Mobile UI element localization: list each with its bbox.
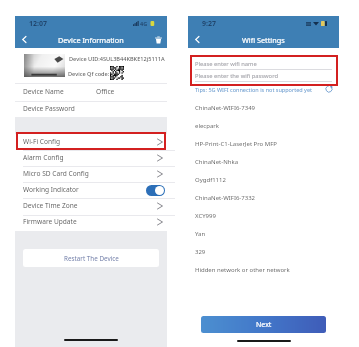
staticText: Yan xyxy=(195,230,206,238)
staticText: XCY999 xyxy=(195,212,216,220)
button[interactable]: Back xyxy=(188,31,206,48)
button[interactable]: HP-Print-C1-LaserJet Pro MFP xyxy=(195,135,332,153)
staticText: Device Name xyxy=(23,87,64,96)
button[interactable]: Device Password xyxy=(15,102,167,117)
staticText: ChinaNet-Nhka xyxy=(195,158,239,166)
button[interactable]: ChinaNet-WIFI6-7332 xyxy=(195,189,332,207)
button[interactable]: Delete device xyxy=(151,33,165,47)
staticText: Oygdf1112 xyxy=(195,176,226,184)
staticText: Device Time Zone xyxy=(23,201,78,210)
button[interactable]: elecpark xyxy=(195,117,332,135)
button[interactable]: Next xyxy=(201,316,326,333)
button[interactable]: Alarm Config xyxy=(15,150,167,166)
staticText: Device UID:4SUL3B44KBKE12j5111A xyxy=(69,55,165,63)
staticText: ChinaNet-WIFI6-7332 xyxy=(195,194,256,202)
staticText: Alarm Config xyxy=(23,153,64,162)
button[interactable]: Hidden network or other network xyxy=(195,261,332,279)
button[interactable]: Refresh xyxy=(324,84,334,94)
button[interactable]: Device Name xyxy=(15,84,167,101)
staticText: Device Password xyxy=(23,104,75,113)
button[interactable]: Firmware Update xyxy=(15,214,167,230)
button[interactable]: Working Indicator xyxy=(15,182,167,198)
button[interactable]: Micro SD Card Config xyxy=(15,166,167,182)
staticText: 329 xyxy=(195,248,206,256)
staticText: HP-Print-C1-LaserJet Pro MFP xyxy=(195,140,277,148)
staticText: Hidden network or other network xyxy=(195,266,290,274)
staticText: Firmware Update xyxy=(23,217,77,226)
button[interactable]: Oygdf1112 xyxy=(195,171,332,189)
staticText: Please enter the wifi password xyxy=(195,72,278,80)
staticText: ChinaNet-WIFI6-7349 xyxy=(195,104,256,112)
staticText: Restart The Device xyxy=(64,254,119,263)
staticText: Working Indicator xyxy=(23,185,79,194)
staticText: Next xyxy=(256,320,272,330)
staticText: Tips: 5G WIFI connection is not supporte… xyxy=(195,86,312,93)
button[interactable]: Restart The Device xyxy=(23,249,159,267)
button[interactable]: 329 xyxy=(195,243,332,261)
staticText: 12:07 xyxy=(29,19,47,29)
staticText: Wifi Settings xyxy=(242,35,285,45)
button[interactable]: Device Time Zone xyxy=(15,198,167,214)
staticText: Micro SD Card Config xyxy=(23,169,89,178)
button[interactable]: Yan xyxy=(195,225,332,243)
button[interactable]: XCY999 xyxy=(195,207,332,225)
button[interactable]: Wi-Fi Config xyxy=(15,134,167,150)
button[interactable]: Back xyxy=(15,31,33,48)
button[interactable]: ChinaNet-WIFI6-7349 xyxy=(195,99,332,117)
staticText: Office xyxy=(96,87,115,96)
staticText: 4G xyxy=(140,20,148,27)
button[interactable]: ChinaNet-Nhka xyxy=(195,153,332,171)
staticText: Wi-Fi Config xyxy=(23,137,61,146)
staticText: Device Qf code: xyxy=(68,70,110,78)
staticText: Device Information xyxy=(58,35,124,45)
button[interactable]: Please enter the wifi password xyxy=(195,70,332,82)
staticText: Please enter wifi name xyxy=(195,60,257,68)
staticText: 9:27 xyxy=(202,19,216,29)
staticText: elecpark xyxy=(195,122,219,130)
button[interactable]: Please enter wifi name xyxy=(195,58,332,70)
